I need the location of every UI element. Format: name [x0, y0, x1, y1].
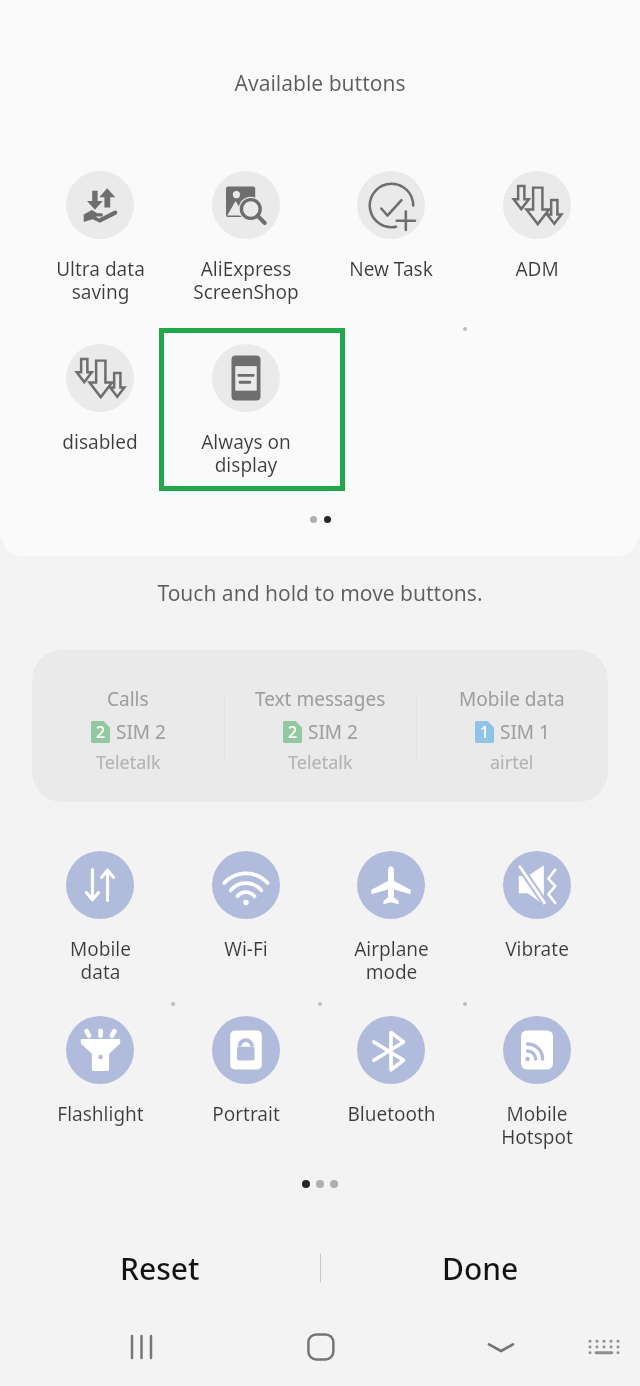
button[interactable]: Airplane mode: [318, 847, 464, 981]
button[interactable]: Back: [463, 1309, 539, 1385]
staticText: Teletalk: [96, 750, 161, 775]
staticText: AliExpress ScreenShop: [193, 256, 299, 305]
staticText: Mobile data: [70, 936, 131, 985]
button[interactable]: disabled: [27, 340, 173, 451]
staticText: Always on display: [201, 429, 291, 478]
staticText: Teletalk: [288, 750, 353, 775]
button[interactable]: Flashlight: [27, 1012, 173, 1123]
button[interactable]: Mobile data: [416, 650, 608, 739]
staticText: Wi-Fi: [224, 936, 268, 962]
staticText: Ultra data saving: [56, 256, 145, 305]
staticText: Portrait: [212, 1101, 280, 1127]
staticText: Text messages: [255, 686, 386, 712]
staticText: Bluetooth: [347, 1101, 436, 1127]
button[interactable]: Ultra data saving: [27, 167, 173, 301]
staticText: Airplane mode: [354, 936, 429, 985]
staticText: Mobile Hotspot: [501, 1101, 573, 1150]
staticText: Flashlight: [57, 1101, 144, 1127]
staticText: disabled: [62, 429, 138, 455]
button[interactable]: Home: [283, 1309, 359, 1385]
button[interactable]: Reset: [0, 1232, 320, 1304]
button[interactable]: ADM: [464, 167, 610, 278]
button[interactable]: Recents: [105, 1309, 181, 1385]
staticText: New Task: [349, 256, 433, 282]
button[interactable]: Keyboard: [566, 1309, 640, 1385]
staticText: Reset: [120, 1248, 200, 1289]
staticText: SIM 2: [116, 719, 166, 745]
button[interactable]: Done: [320, 1232, 640, 1304]
staticText: 1: [480, 721, 490, 743]
staticText: SIM 2: [308, 719, 358, 745]
button[interactable]: Mobile data: [27, 847, 173, 981]
staticText: 2: [288, 721, 298, 743]
staticText: 2: [96, 721, 106, 743]
staticText: SIM 1: [500, 719, 550, 745]
staticText: Calls: [107, 686, 149, 712]
button[interactable]: Mobile Hotspot: [464, 1012, 610, 1146]
button[interactable]: AliExpress ScreenShop: [173, 167, 319, 301]
staticText: Done: [442, 1248, 519, 1289]
staticText: Available buttons: [0, 69, 640, 98]
button[interactable]: Bluetooth: [318, 1012, 464, 1123]
staticText: Vibrate: [505, 936, 569, 962]
staticText: ADM: [515, 256, 559, 282]
button[interactable]: Wi-Fi: [173, 847, 319, 958]
button[interactable]: Text messages: [224, 650, 416, 739]
staticText: airtel: [490, 750, 534, 775]
button[interactable]: Always on display: [173, 340, 319, 474]
staticText: Touch and hold to move buttons.: [0, 579, 640, 608]
staticText: Mobile data: [459, 686, 565, 712]
button[interactable]: Vibrate: [464, 847, 610, 958]
button[interactable]: New Task: [318, 167, 464, 278]
button[interactable]: Calls: [32, 650, 224, 739]
button[interactable]: Portrait: [173, 1012, 319, 1123]
